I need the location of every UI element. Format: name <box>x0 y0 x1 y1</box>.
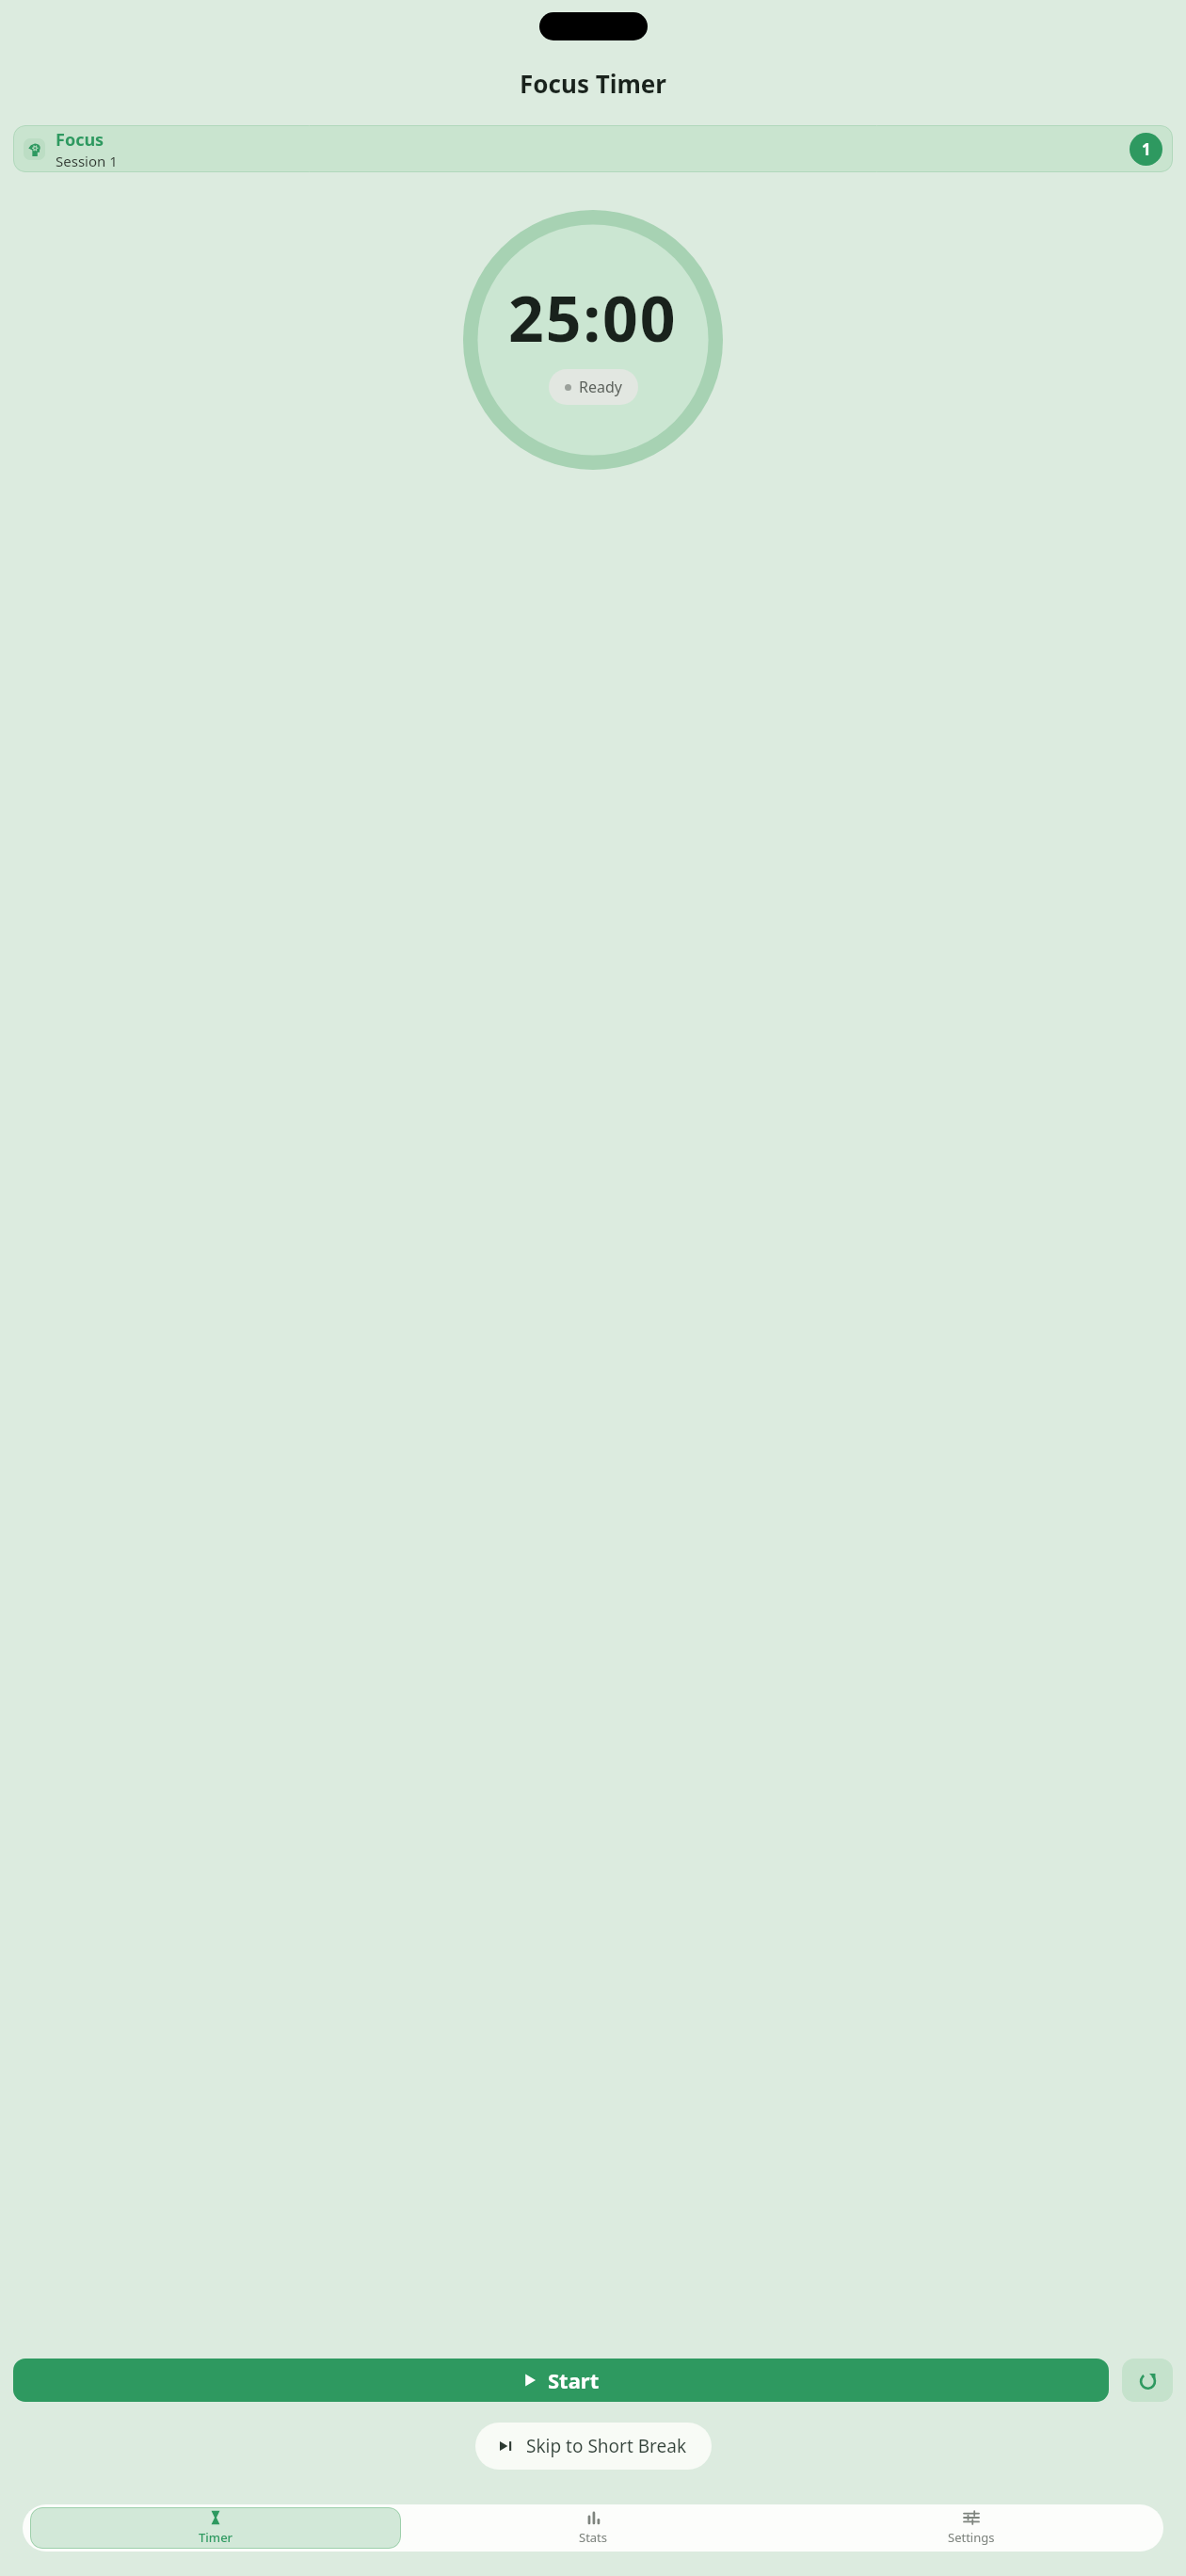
button[interactable]: Timer <box>30 2507 401 2549</box>
button[interactable]: Settings <box>786 2507 1156 2549</box>
staticText: Stats <box>579 2529 608 2546</box>
button[interactable]: Stats <box>409 2507 778 2549</box>
staticText: Skip to Short Break <box>526 2434 687 2458</box>
staticText: Session 1 <box>56 152 118 170</box>
staticText: Timer <box>199 2529 233 2546</box>
button[interactable]: Start <box>13 2359 1109 2402</box>
staticText: Focus Timer <box>0 67 1186 100</box>
button[interactable]: Skip to Short Break <box>475 2423 712 2470</box>
button[interactable]: Reset timer <box>1122 2359 1173 2402</box>
staticText: Settings <box>948 2529 995 2546</box>
staticText: Start <box>548 2366 600 2394</box>
staticText: Ready <box>579 377 622 397</box>
staticText: 1 <box>1142 138 1151 160</box>
staticText: 25:00 <box>508 275 678 360</box>
staticText: Focus <box>56 128 104 152</box>
button[interactable]: Focus <box>13 125 1173 172</box>
